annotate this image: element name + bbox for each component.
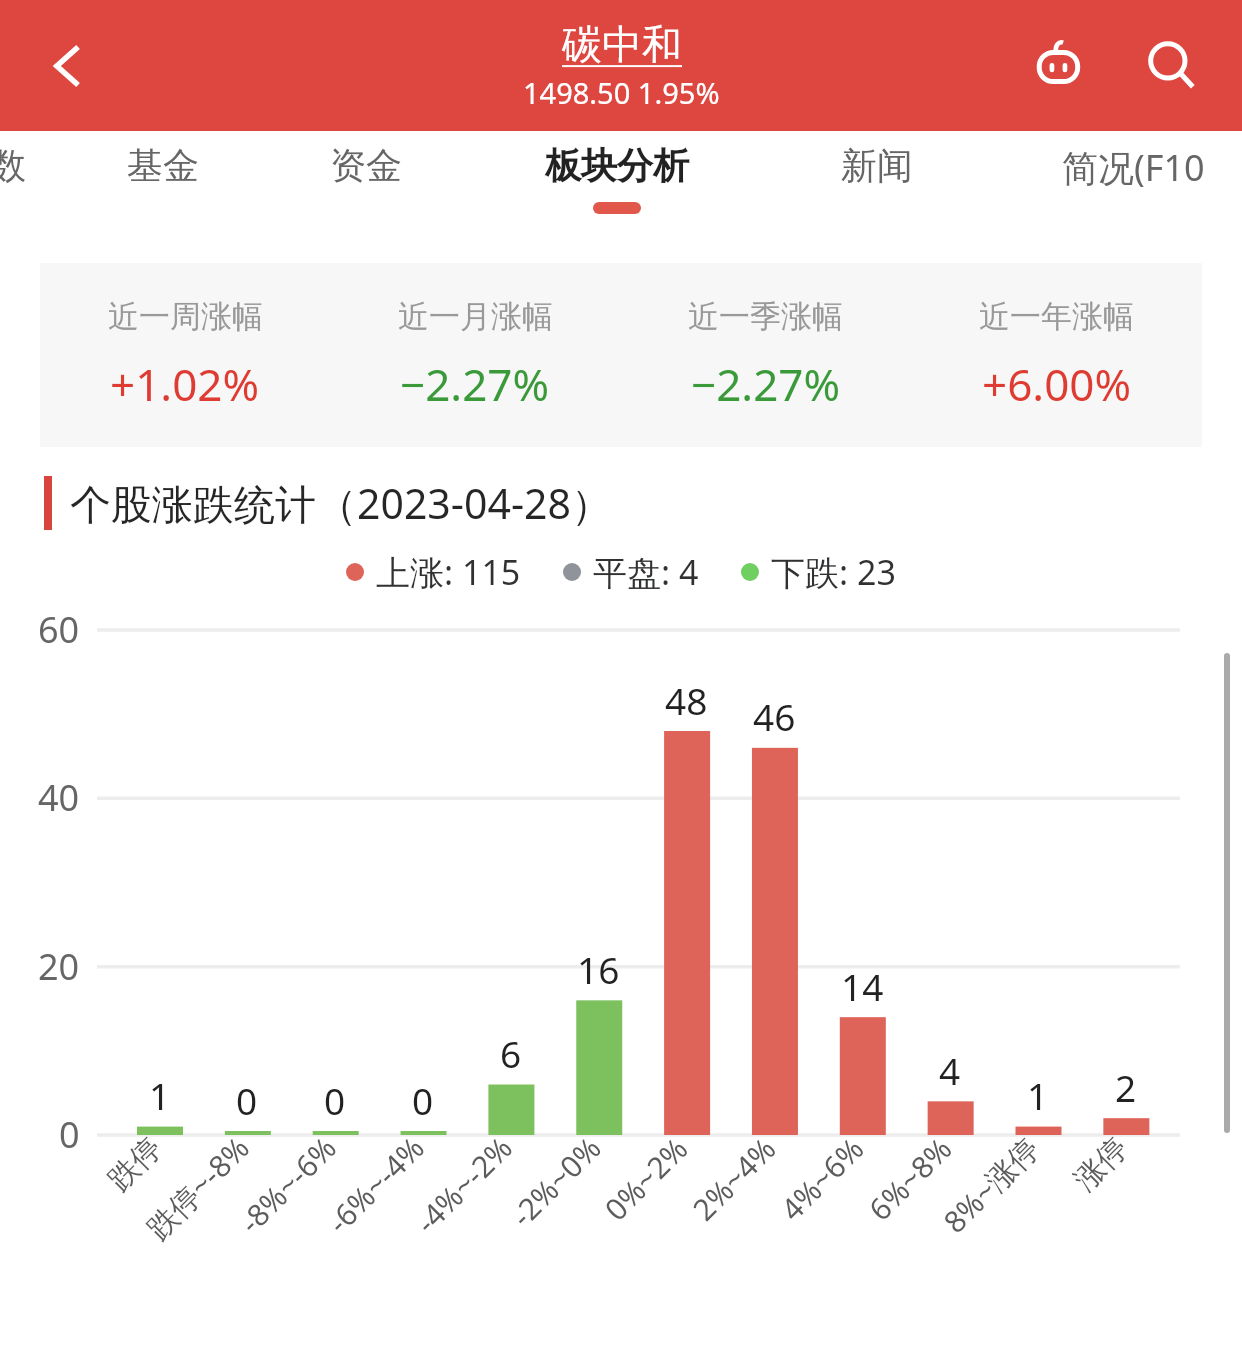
staticText: 数 <box>0 143 26 188</box>
staticText: 2 <box>1115 1062 1137 1112</box>
staticText: +6.00% <box>982 354 1132 414</box>
staticText: 6 <box>500 1028 522 1078</box>
staticText: 简况(F10 <box>1062 143 1205 192</box>
staticText: 上涨: 115 <box>376 549 521 595</box>
staticText: 40 <box>38 773 80 822</box>
button[interactable]: 数 <box>0 143 26 188</box>
staticText: -8%~-6% <box>230 1127 345 1242</box>
staticText: 新闻 <box>841 143 913 188</box>
button[interactable]: 近一周涨幅 <box>40 263 330 447</box>
staticText: 1 <box>1027 1070 1049 1120</box>
staticText: 跌停 <box>100 1129 170 1199</box>
staticText: +1.02% <box>110 354 260 414</box>
staticText: 1 <box>149 1070 171 1120</box>
button[interactable]: 简况(F10 <box>1062 143 1205 192</box>
staticText: 近一年涨幅 <box>979 297 1134 336</box>
staticText: -2%~0% <box>502 1128 609 1235</box>
staticText: 6%~8% <box>859 1128 960 1229</box>
button[interactable]: 新闻 <box>841 143 913 188</box>
button[interactable]: Back <box>40 38 96 94</box>
button[interactable]: 板块分析 <box>545 143 689 214</box>
button[interactable]: 上涨: 115 <box>346 549 521 595</box>
staticText: 14 <box>841 961 884 1011</box>
staticText: -6%~-4% <box>318 1127 433 1242</box>
staticText: 平盘: 4 <box>593 549 699 595</box>
button[interactable]: 基金 <box>127 143 199 188</box>
staticText: 涨停 <box>1066 1129 1136 1199</box>
staticText: 近一季涨幅 <box>688 297 843 336</box>
staticText: 0 <box>412 1075 434 1125</box>
button[interactable]: AI assistant <box>1028 34 1092 98</box>
staticText: 0 <box>59 1110 80 1159</box>
staticText: 2%~4% <box>683 1128 784 1229</box>
staticText: 0 <box>324 1075 346 1125</box>
staticText: 8%~涨停 <box>934 1128 1048 1241</box>
staticText: 16 <box>577 944 620 994</box>
staticText: 46 <box>753 691 796 741</box>
staticText: 20 <box>38 942 80 991</box>
staticText: 个股涨跌统计（2023-04-28） <box>70 475 613 531</box>
staticText: 跌停~-8% <box>137 1127 258 1248</box>
staticText: 4 <box>939 1045 961 1095</box>
staticText: 近一周涨幅 <box>108 297 263 336</box>
staticText: 基金 <box>127 143 199 188</box>
button[interactable]: 资金 <box>330 143 402 188</box>
button[interactable]: 平盘: 4 <box>563 549 699 595</box>
button[interactable]: 近一月涨幅 <box>330 263 620 447</box>
staticText: −2.27% <box>400 354 550 414</box>
staticText: 0%~2% <box>595 1128 696 1229</box>
button[interactable]: 下跌: 23 <box>741 549 896 595</box>
staticText: 0 <box>236 1075 258 1125</box>
staticText: 4%~6% <box>771 1128 872 1229</box>
staticText: 1498.50 1.95% <box>523 73 720 112</box>
button[interactable]: 近一年涨幅 <box>911 263 1202 447</box>
staticText: 下跌: 23 <box>771 549 896 595</box>
staticText: 60 <box>38 605 80 654</box>
staticText: 资金 <box>330 143 402 188</box>
button[interactable]: Search <box>1140 34 1204 98</box>
button[interactable]: 近一季涨幅 <box>620 263 911 447</box>
staticText: −2.27% <box>691 354 841 414</box>
staticText: 48 <box>665 675 708 725</box>
staticText: -4%~-2% <box>406 1127 521 1242</box>
staticText: 近一月涨幅 <box>398 297 553 336</box>
staticText: 碳中和 <box>562 19 682 69</box>
staticText: 板块分析 <box>545 143 689 188</box>
